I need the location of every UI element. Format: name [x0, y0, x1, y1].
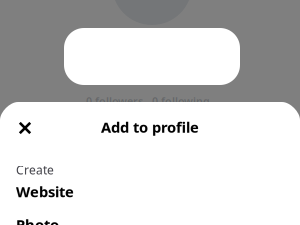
staticText: 0 followers: [86, 94, 143, 108]
staticText: Website: [16, 182, 74, 201]
button[interactable]: Close: [12, 115, 38, 141]
staticText: 0 following: [152, 94, 210, 108]
staticText: Add to profile: [101, 117, 199, 137]
staticText: Photo: [16, 215, 59, 225]
staticText: Create: [16, 162, 54, 178]
button[interactable]: Photo: [0, 208, 300, 225]
button[interactable]: Website: [0, 175, 300, 208]
